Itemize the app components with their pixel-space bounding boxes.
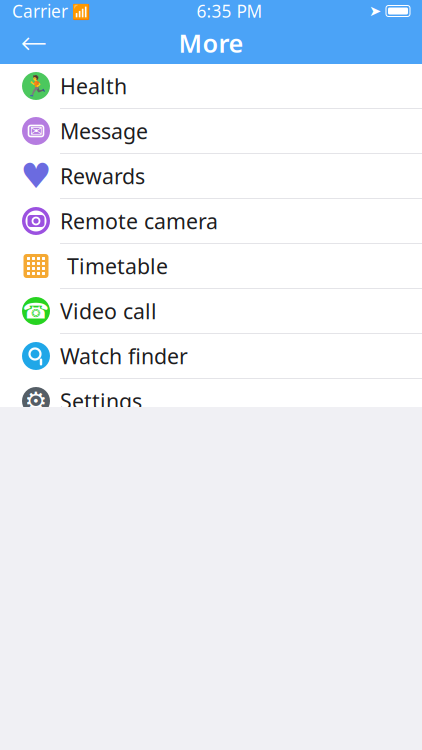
staticText: More bbox=[178, 26, 243, 60]
staticText: ♥ bbox=[20, 156, 51, 196]
staticText: 6:35 PM bbox=[196, 0, 262, 22]
button[interactable]: Timetable bbox=[0, 244, 422, 289]
button[interactable]: Back bbox=[12, 22, 56, 64]
button[interactable]: Remote camera bbox=[0, 199, 422, 244]
button[interactable]: ♥ bbox=[0, 154, 422, 199]
staticText: 🏃 bbox=[23, 75, 48, 97]
staticText: 📶 bbox=[68, 1, 90, 21]
staticText: Carrier bbox=[12, 0, 68, 22]
button[interactable]: 🏃 bbox=[0, 64, 422, 109]
staticText: ☎ bbox=[22, 299, 49, 323]
staticText: Video call bbox=[60, 297, 157, 325]
staticText: Health bbox=[60, 72, 127, 100]
staticText: Watch finder bbox=[60, 342, 188, 370]
staticText: ⚙ bbox=[24, 387, 47, 415]
staticText: Remote camera bbox=[60, 207, 218, 235]
staticText: ➤ bbox=[369, 3, 381, 19]
staticText: Settings bbox=[60, 387, 142, 415]
staticText: Message bbox=[60, 117, 148, 145]
button[interactable]: ⚙ bbox=[0, 379, 422, 424]
staticText: ✉ bbox=[30, 123, 42, 139]
staticText: ← bbox=[20, 25, 47, 61]
button[interactable]: Watch finder bbox=[0, 334, 422, 379]
button[interactable]: ☎ bbox=[0, 289, 422, 334]
button[interactable]: ✉ bbox=[0, 109, 422, 154]
staticText: Rewards bbox=[60, 162, 145, 190]
staticText: Timetable bbox=[67, 252, 168, 280]
